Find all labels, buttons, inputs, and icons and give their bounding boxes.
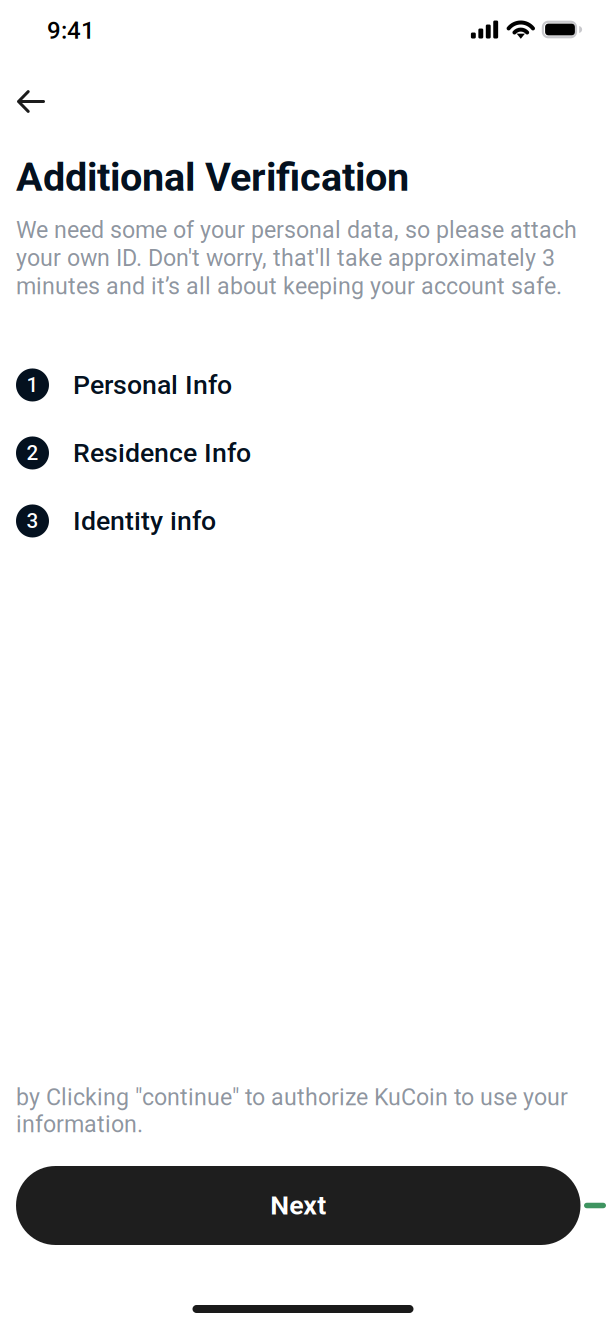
staticText: Personal Info <box>73 369 232 401</box>
button[interactable]: Residence Info <box>16 436 590 470</box>
staticText: Identity info <box>73 505 216 537</box>
staticText: 1 <box>26 373 38 397</box>
staticText: 3 <box>26 509 38 533</box>
staticText: Additional Verification <box>16 154 409 200</box>
staticText: 9:41 <box>47 16 95 44</box>
button[interactable]: Back <box>8 79 54 124</box>
staticText: 2 <box>26 441 38 465</box>
button[interactable]: Next <box>16 1166 580 1245</box>
button[interactable]: Personal Info <box>16 368 590 402</box>
staticText: Residence Info <box>73 437 251 469</box>
staticText: We need some of your personal data, so p… <box>16 216 577 300</box>
staticText: Next <box>270 1190 326 1221</box>
button[interactable]: Identity info <box>16 504 590 538</box>
staticText: by Clicking "continue" to authorize KuCo… <box>16 1084 568 1138</box>
